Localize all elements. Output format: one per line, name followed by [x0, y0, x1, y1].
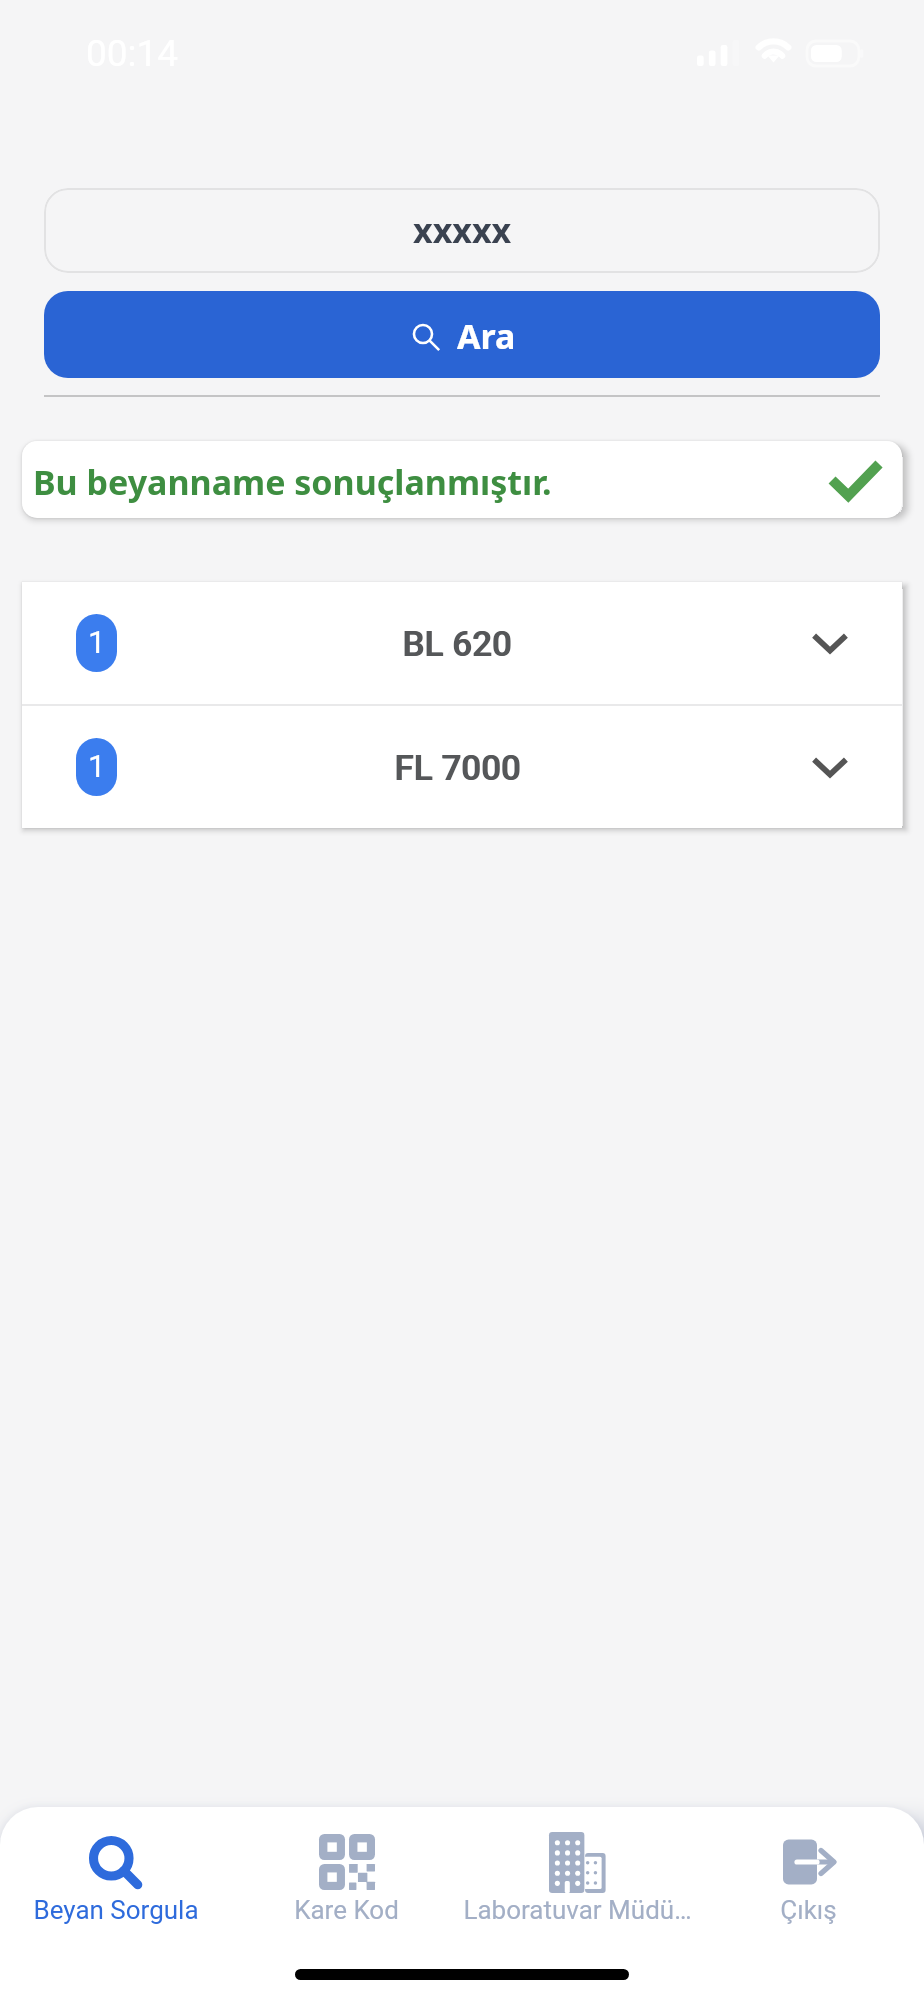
- button[interactable]: Çıkış: [693, 1830, 924, 1925]
- button[interactable]: 1: [22, 582, 902, 704]
- staticText: 1: [88, 624, 106, 660]
- button[interactable]: 1: [22, 706, 902, 828]
- staticText: 1: [88, 748, 106, 784]
- staticText: Laboratuvar Müdürlüğü: [462, 1895, 693, 1925]
- button[interactable]: Ara: [44, 291, 880, 378]
- staticText: Çıkış: [780, 1895, 837, 1925]
- staticText: Kare Kod: [294, 1895, 399, 1925]
- button[interactable]: Laboratuvar Müdürlüğü: [462, 1830, 693, 1925]
- staticText: Bu beyanname sonuçlanmıştır.: [33, 459, 552, 505]
- staticText: FL 7000: [394, 748, 521, 789]
- staticText: Ara: [457, 313, 516, 359]
- staticText: 00:14: [86, 32, 179, 75]
- staticText: BL 620: [403, 624, 513, 665]
- button[interactable]: Bu beyanname sonuçlanmıştır.: [22, 441, 902, 518]
- button[interactable]: Beyan Sorgula: [0, 1830, 231, 1925]
- other: Expand: [811, 630, 849, 656]
- button[interactable]: xxxxx: [44, 188, 880, 273]
- staticText: Beyan Sorgula: [33, 1895, 199, 1925]
- staticText: BL 620: [402, 624, 512, 665]
- staticText: FL 7000: [395, 748, 522, 789]
- button[interactable]: Kare Kod: [231, 1830, 462, 1925]
- staticText: xxxxx: [413, 207, 512, 253]
- other: Expand: [811, 754, 849, 780]
